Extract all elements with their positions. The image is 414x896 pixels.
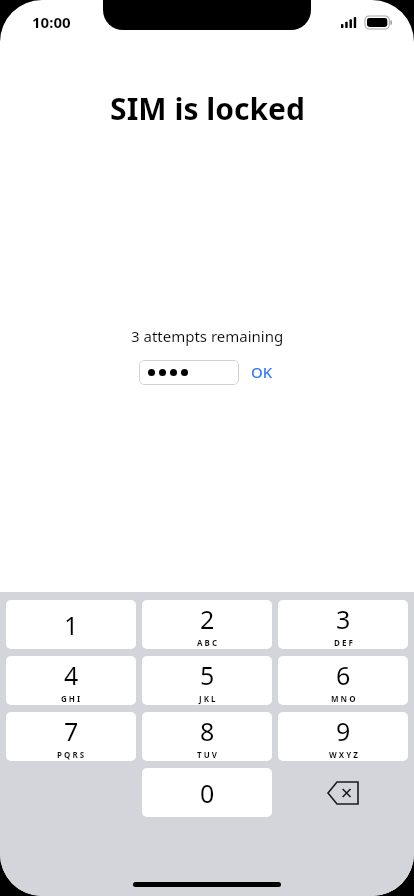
staticText: G H I [61, 693, 81, 704]
button[interactable]: 7 [6, 712, 136, 761]
staticText: 6 [336, 658, 351, 692]
staticText: 5 [200, 658, 215, 692]
staticText: 4 [64, 658, 79, 692]
button[interactable]: 1 [6, 600, 136, 649]
staticText: 10:00 [32, 12, 71, 32]
staticText: J K L [199, 693, 216, 704]
staticText: P Q R S [57, 749, 85, 760]
staticText: A B C [197, 637, 218, 648]
button[interactable]: 0 [142, 768, 272, 817]
staticText: 7 [64, 714, 79, 748]
staticText: 8 [200, 714, 215, 748]
staticText: M N O [331, 693, 356, 704]
staticText: 9 [336, 714, 351, 748]
button[interactable]: 5 [142, 656, 272, 705]
button[interactable] [139, 360, 239, 385]
staticText: SIM is locked [110, 88, 305, 129]
staticText: W X Y Z [329, 749, 358, 760]
staticText: OK [251, 362, 273, 382]
button[interactable]: 2 [142, 600, 272, 649]
button[interactable]: 6 [278, 656, 408, 705]
button[interactable]: 9 [278, 712, 408, 761]
staticText: 1 [64, 608, 79, 642]
staticText: 3 attempts remaining [131, 326, 284, 346]
button[interactable]: 4 [6, 656, 136, 705]
staticText: 2 [200, 602, 215, 636]
button[interactable]: Backspace [278, 768, 408, 817]
button[interactable]: 3 [278, 600, 408, 649]
staticText: 0 [200, 776, 215, 810]
button[interactable]: 8 [142, 712, 272, 761]
button[interactable]: OK [248, 359, 276, 385]
staticText: D E F [334, 637, 353, 648]
staticText: T U V [197, 749, 218, 760]
staticText: 3 [336, 602, 351, 636]
